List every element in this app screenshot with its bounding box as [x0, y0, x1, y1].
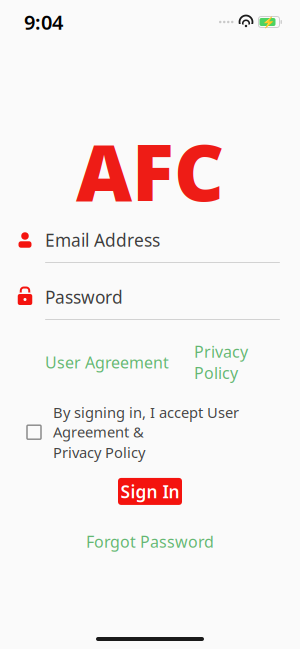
button[interactable]: User Agreement: [45, 349, 169, 376]
button[interactable]: Privacy Policy: [194, 338, 248, 386]
staticText: Email Address: [45, 228, 160, 251]
button[interactable]: Sign In: [118, 478, 182, 505]
staticText: Privacy Policy: [53, 442, 145, 462]
staticText: ⚡: [261, 16, 274, 28]
staticText: Password: [45, 285, 123, 308]
staticText: User Agreement: [45, 352, 169, 373]
staticText: By signing in, I accept User Agreement &: [53, 402, 239, 441]
staticText: Sign In: [120, 480, 179, 503]
button[interactable]: Forgot Password: [78, 527, 222, 556]
staticText: 9:04: [24, 9, 63, 35]
staticText: Privacy Policy: [194, 341, 248, 383]
button[interactable]: Accept User Agreement and Privacy Policy: [27, 425, 41, 439]
staticText: AFC: [76, 120, 224, 222]
staticText: Forgot Password: [86, 531, 214, 552]
